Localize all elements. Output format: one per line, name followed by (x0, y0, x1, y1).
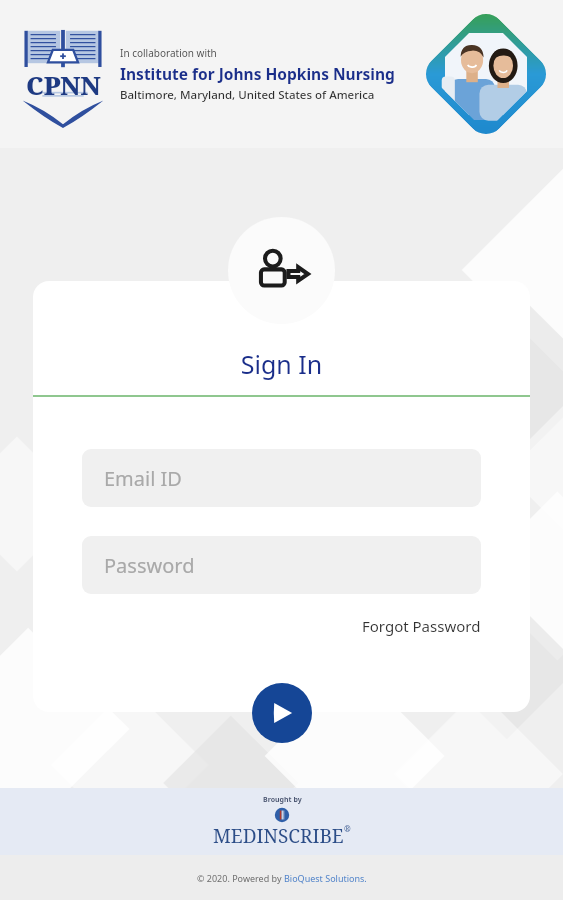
staticText: Email ID (104, 465, 182, 492)
staticText: © 2020. Powered by (197, 872, 284, 884)
button[interactable]: BioQuest Solutions. (284, 872, 367, 884)
button[interactable]: Submit sign in (252, 683, 312, 743)
staticText: Institute for Johns Hopkins Nursing (120, 63, 395, 84)
button[interactable]: Email ID (82, 449, 481, 507)
staticText: CPNN (26, 68, 101, 102)
staticText: Brought by (263, 795, 302, 805)
staticText: Sign In (33, 347, 530, 381)
staticText: ® (344, 823, 351, 834)
button[interactable]: Forgot Password (358, 612, 485, 640)
staticText: Baltimore, Maryland, United States of Am… (120, 87, 375, 103)
staticText: BioQuest Solutions. (284, 872, 367, 884)
staticText: Forgot Password (362, 616, 481, 636)
staticText: MEDINSCRIBE (213, 823, 344, 849)
button[interactable]: Password (82, 536, 481, 594)
staticText: Password (104, 552, 195, 579)
staticText: In collaboration with (120, 46, 217, 60)
